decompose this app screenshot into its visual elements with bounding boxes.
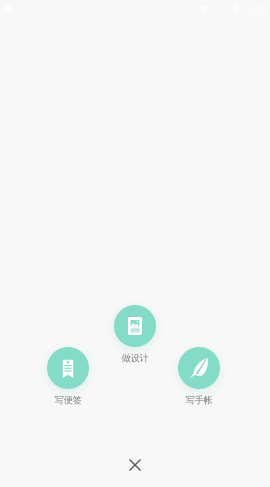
button[interactable]: 写手帐 xyxy=(168,347,230,406)
staticText: 做设计 xyxy=(121,352,148,364)
button[interactable]: 写便签 xyxy=(37,347,99,406)
button[interactable]: 做设计 xyxy=(104,305,166,364)
button[interactable]: Close xyxy=(115,445,155,485)
staticText: 写手帐 xyxy=(185,394,212,406)
staticText: 写便签 xyxy=(54,394,81,406)
